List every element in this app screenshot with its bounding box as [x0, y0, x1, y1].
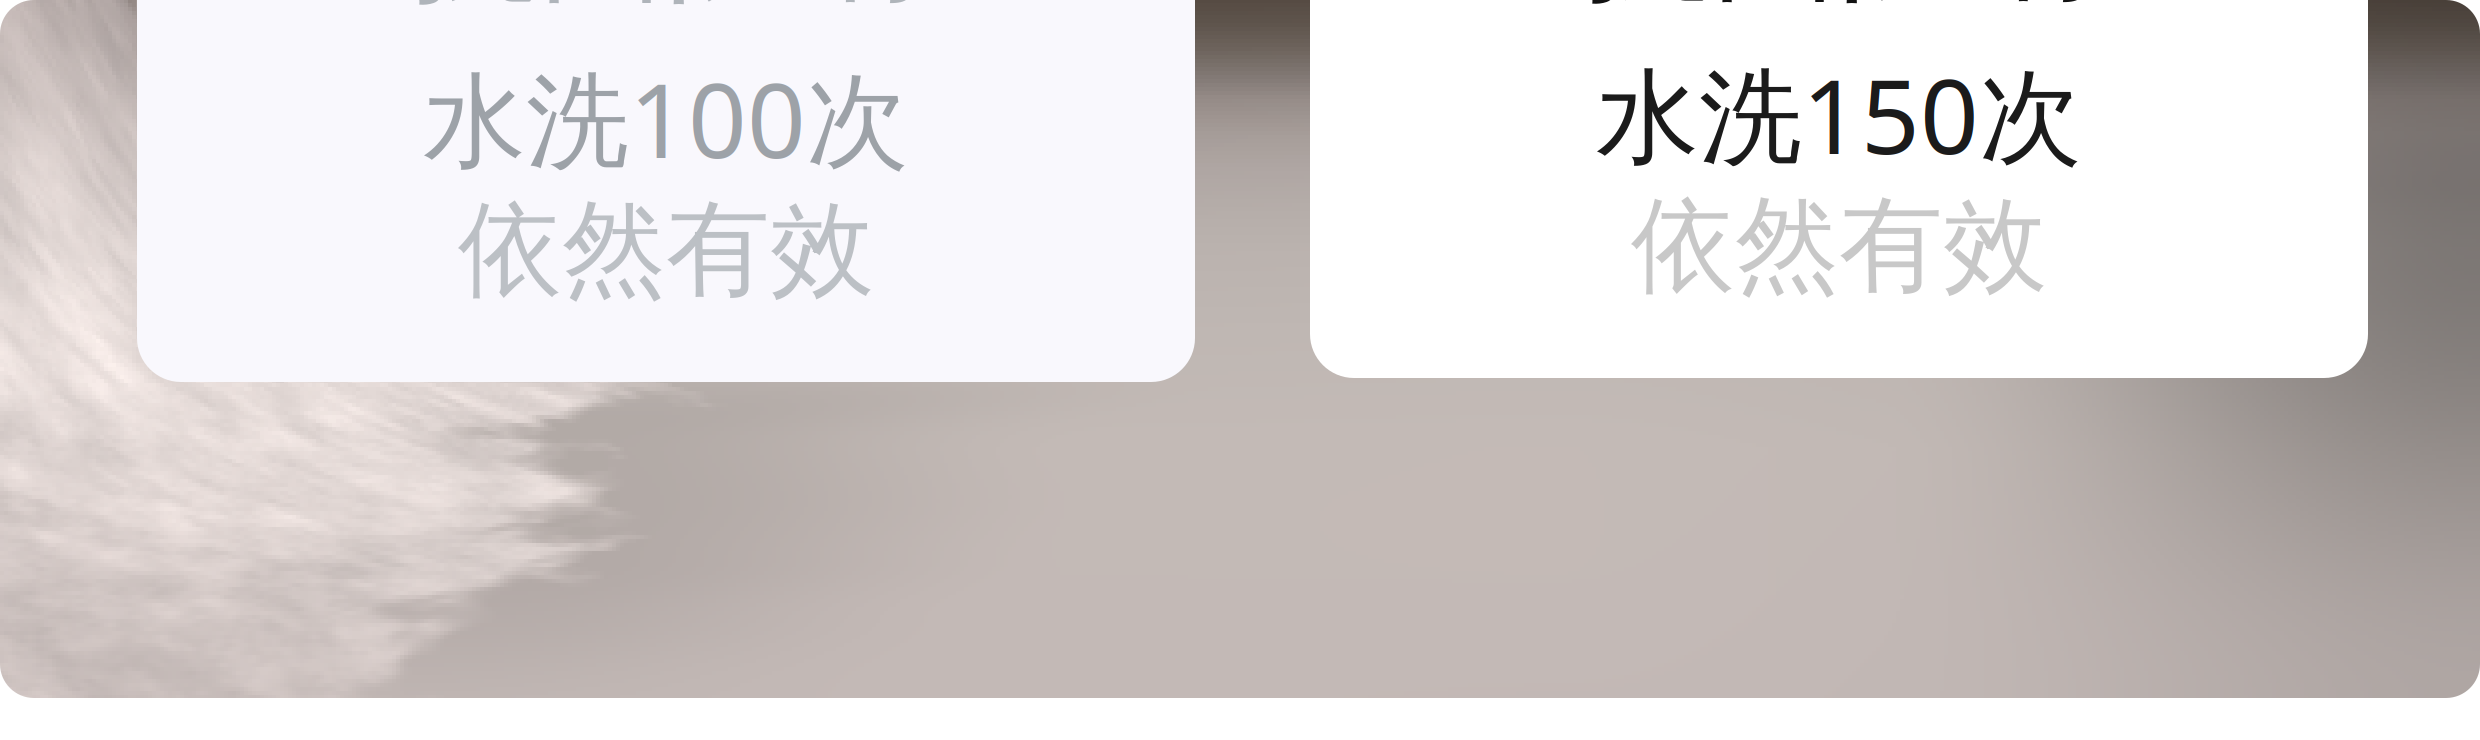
staticText: 抗菌防螨 — [1583, 0, 2095, 22]
staticText: 依然有效 — [458, 186, 874, 314]
button[interactable]: 水洗100次 — [137, 0, 1195, 382]
staticText: 抗菌防螨 — [410, 0, 922, 23]
staticText: 依然有效 — [1631, 182, 2047, 310]
button[interactable]: 水洗150次 — [1310, 0, 2368, 378]
staticText: 水洗150次 — [1596, 46, 2082, 182]
staticText: 水洗100次 — [423, 50, 909, 186]
